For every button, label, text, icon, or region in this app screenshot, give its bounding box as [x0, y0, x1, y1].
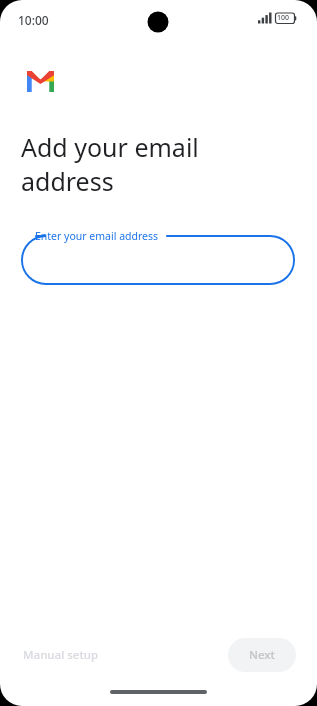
staticText: 10:00 — [18, 12, 49, 28]
staticText: Add your email address — [21, 130, 199, 199]
staticText: Manual setup — [23, 647, 99, 663]
button[interactable]: Enter your email address — [21, 225, 295, 285]
button[interactable]: Next — [228, 638, 296, 672]
staticText: 100 — [277, 13, 290, 23]
staticText: Enter your email address — [35, 229, 159, 243]
staticText: Next — [249, 647, 275, 663]
button[interactable]: Manual setup — [14, 639, 108, 671]
